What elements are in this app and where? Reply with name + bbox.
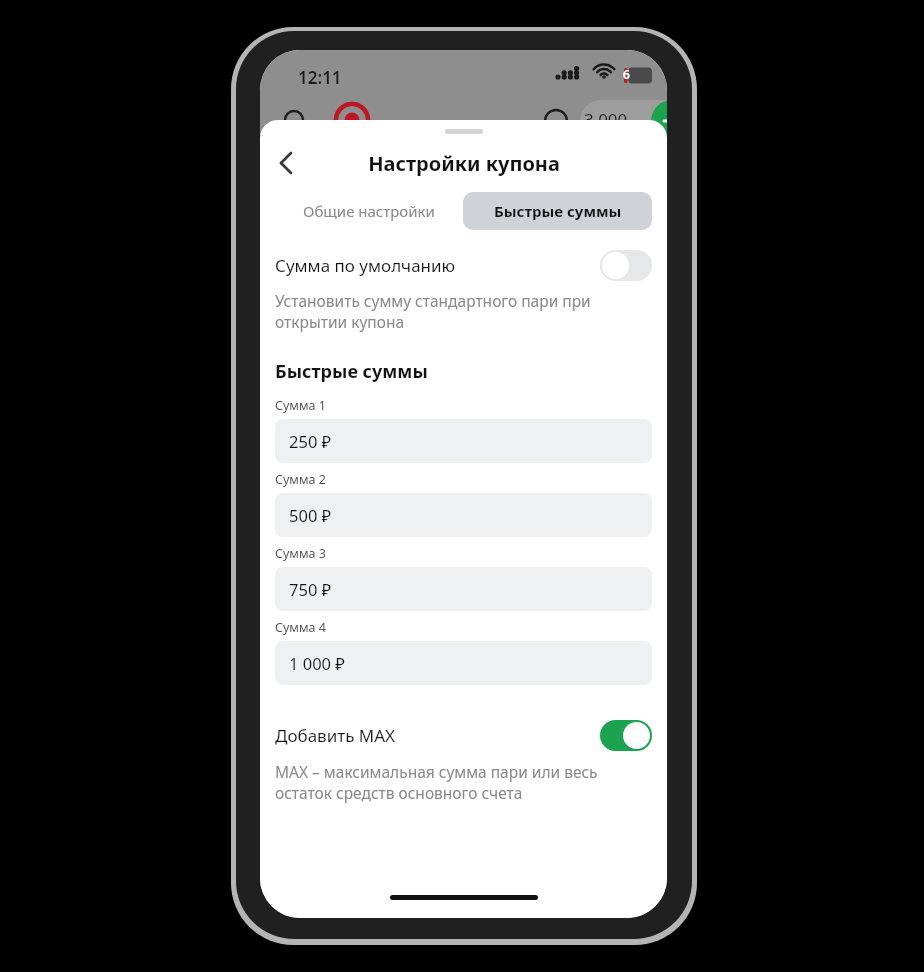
staticText: 250 ₽: [289, 430, 332, 452]
button[interactable]: Сумма по умолчанию: [275, 248, 652, 282]
button[interactable]: 500 ₽: [275, 493, 652, 537]
staticText: 6: [623, 66, 630, 82]
staticText: Сумма 4: [275, 619, 326, 636]
button[interactable]: Назад: [264, 141, 308, 185]
staticText: Сумма 2: [275, 471, 326, 488]
button[interactable]: 750 ₽: [275, 567, 652, 611]
staticText: MAX – максимальная сумма пари или весь о…: [275, 761, 598, 804]
staticText: Добавить MAX: [275, 724, 600, 747]
button[interactable]: Включено: [600, 720, 652, 751]
staticText: 500 ₽: [289, 504, 332, 526]
staticText: Сумма 1: [275, 397, 326, 414]
staticText: Установить сумму стандартного пари при о…: [275, 290, 591, 333]
staticText: Настройки купона: [368, 150, 560, 177]
staticText: 3 000: [584, 108, 628, 131]
staticText: Общие настройки: [303, 201, 435, 221]
staticText: Быстрые суммы: [494, 201, 622, 221]
staticText: Быстрые суммы: [275, 359, 428, 384]
button[interactable]: 250 ₽: [275, 419, 652, 463]
button[interactable]: Добавить MAX: [275, 718, 652, 752]
button[interactable]: 1 000 ₽: [275, 641, 652, 685]
staticText: 1 000 ₽: [289, 652, 345, 674]
staticText: 750 ₽: [289, 578, 332, 600]
staticText: Сумма по умолчанию: [275, 254, 600, 277]
button[interactable]: Выключено: [600, 250, 652, 281]
staticText: 12:11: [298, 66, 342, 89]
button[interactable]: Общие настройки: [275, 192, 463, 230]
staticText: Сумма 3: [275, 545, 326, 562]
button[interactable]: Быстрые суммы: [463, 192, 652, 230]
